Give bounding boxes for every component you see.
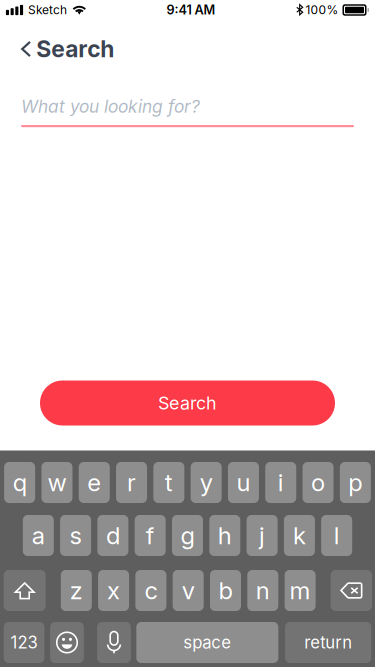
staticText: u: [236, 468, 250, 497]
staticText: f: [146, 521, 155, 550]
staticText: l: [334, 521, 340, 550]
staticText: z: [70, 576, 83, 605]
button[interactable]: x: [98, 570, 129, 611]
staticText: g: [180, 521, 194, 550]
staticText: 9:41 AM: [166, 2, 215, 18]
staticText: Sketch: [28, 3, 67, 17]
button[interactable]: 123: [4, 622, 44, 663]
button[interactable]: Search: [40, 380, 335, 425]
button[interactable]: Search: [0, 20, 375, 78]
staticText: m: [290, 576, 311, 605]
staticText: i: [278, 468, 284, 497]
button[interactable]: h: [209, 515, 240, 556]
staticText: x: [107, 576, 120, 605]
staticText: What you looking for?: [21, 96, 200, 117]
staticText: space: [183, 632, 231, 653]
button[interactable]: o: [303, 462, 334, 503]
button[interactable]: y: [191, 462, 222, 503]
staticText: y: [200, 468, 213, 497]
button[interactable]: n: [247, 570, 278, 611]
button[interactable]: p: [340, 462, 371, 503]
button[interactable]: e: [79, 462, 110, 503]
button[interactable]: Delete: [331, 570, 372, 611]
button[interactable]: a: [23, 515, 54, 556]
button[interactable]: b: [210, 570, 241, 611]
button[interactable]: i: [265, 462, 296, 503]
staticText: return: [304, 632, 352, 653]
button[interactable]: c: [135, 570, 166, 611]
staticText: 123: [11, 632, 38, 653]
staticText: w: [47, 468, 66, 497]
button[interactable]: Dictate: [97, 622, 131, 663]
staticText: b: [218, 576, 232, 605]
staticText: Search: [36, 35, 114, 63]
button[interactable]: d: [97, 515, 128, 556]
button[interactable]: j: [247, 515, 278, 556]
button[interactable]: k: [284, 515, 315, 556]
button[interactable]: v: [173, 570, 204, 611]
button[interactable]: m: [285, 570, 316, 611]
button[interactable]: s: [60, 515, 91, 556]
button[interactable]: Shift: [4, 570, 46, 611]
button[interactable]: w: [41, 462, 72, 503]
button[interactable]: u: [228, 462, 259, 503]
staticText: c: [144, 576, 157, 605]
button[interactable]: z: [61, 570, 92, 611]
staticText: n: [256, 576, 270, 605]
button[interactable]: f: [135, 515, 166, 556]
button[interactable]: Emoji: [50, 622, 84, 663]
button[interactable]: l: [321, 515, 352, 556]
staticText: 100%: [305, 3, 338, 17]
staticText: q: [13, 468, 27, 497]
button[interactable]: space: [136, 622, 278, 663]
staticText: t: [165, 468, 173, 497]
staticText: o: [311, 468, 325, 497]
staticText: v: [182, 576, 195, 605]
button[interactable]: q: [4, 462, 35, 503]
staticText: h: [218, 521, 232, 550]
staticText: e: [87, 468, 101, 497]
button[interactable]: r: [116, 462, 147, 503]
staticText: s: [70, 521, 82, 550]
staticText: k: [293, 521, 306, 550]
staticText: d: [106, 521, 120, 550]
staticText: Search: [158, 392, 217, 414]
button[interactable]: return: [285, 622, 371, 663]
button[interactable]: t: [153, 462, 184, 503]
button[interactable]: g: [172, 515, 203, 556]
staticText: a: [32, 521, 45, 550]
staticText: r: [127, 468, 136, 497]
staticText: j: [259, 521, 265, 550]
staticText: p: [348, 468, 362, 497]
